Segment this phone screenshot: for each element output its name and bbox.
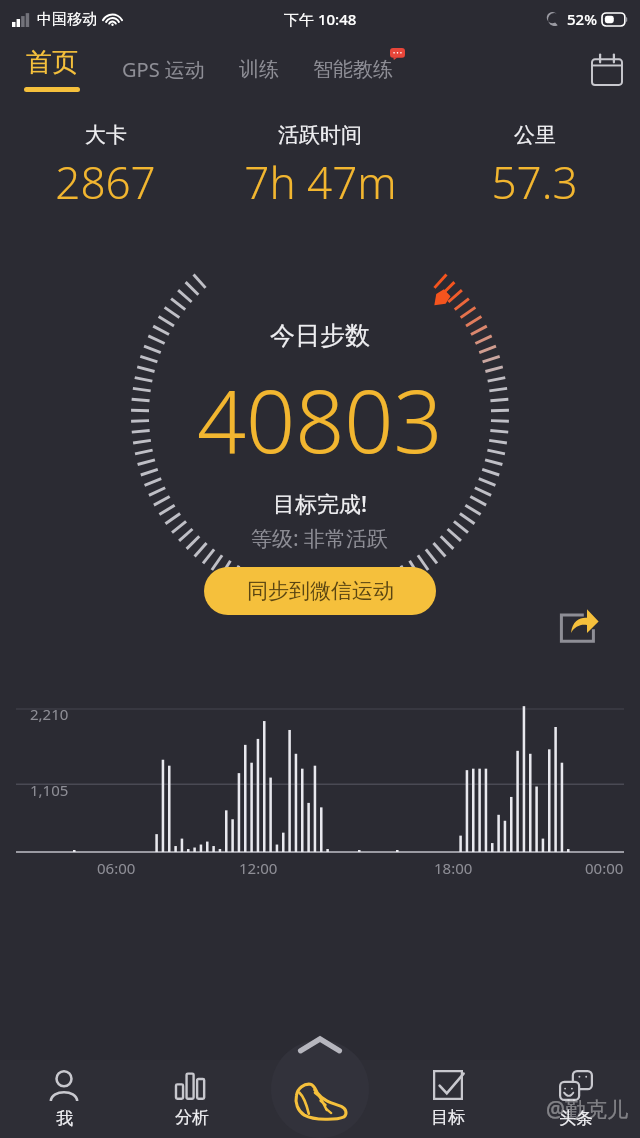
button[interactable]: 我	[0, 1060, 128, 1138]
staticText: 中国移动	[37, 10, 97, 29]
staticText: 06:00	[97, 858, 136, 878]
staticText: 头条	[559, 1108, 593, 1129]
button[interactable]: 大卡	[10, 122, 201, 212]
staticText: 分析	[175, 1107, 209, 1128]
staticText: 00:00	[585, 858, 624, 878]
button[interactable]: GPS 运动	[118, 46, 209, 93]
staticText: 等级: 非常活跃	[251, 524, 389, 553]
button[interactable]: 2,210	[0, 686, 640, 886]
staticText: @勤克儿	[546, 1095, 628, 1124]
staticText: 活跃时间	[278, 122, 362, 148]
staticText: 今日步数	[270, 320, 370, 351]
staticText: 目标	[431, 1107, 465, 1128]
staticText: 目标完成!	[273, 488, 368, 518]
staticText: 首页	[26, 46, 78, 79]
button[interactable]: Steps	[256, 1060, 384, 1138]
staticText: 40803	[197, 361, 443, 478]
staticText: 52%	[567, 9, 597, 29]
staticText: 2,210	[30, 704, 69, 724]
staticText: 公里	[514, 122, 556, 148]
staticText: 我	[56, 1108, 73, 1129]
staticText: 下午 10:48	[284, 9, 357, 29]
staticText: 7h 47m	[244, 152, 397, 212]
button[interactable]: 目标	[384, 1060, 512, 1138]
button[interactable]: Calendar	[584, 46, 640, 93]
staticText: 18:00	[434, 858, 473, 878]
button[interactable]: 活跃时间	[201, 122, 439, 212]
button[interactable]: Share	[556, 602, 602, 648]
button[interactable]: 公里	[439, 122, 630, 212]
button[interactable]: 头条	[512, 1060, 640, 1138]
staticText: 同步到微信运动	[247, 578, 394, 604]
staticText: 12:00	[239, 858, 278, 878]
staticText: 1,105	[30, 780, 69, 800]
staticText: 57.3	[491, 152, 578, 212]
button[interactable]: 首页	[22, 42, 82, 96]
button[interactable]: 训练	[235, 47, 283, 92]
button[interactable]: 同步到微信运动	[204, 567, 436, 615]
staticText: 大卡	[85, 122, 127, 148]
staticText: 2867	[55, 152, 156, 212]
button[interactable]: 智能教练	[309, 47, 397, 92]
staticText: 智能教练	[313, 57, 393, 82]
button[interactable]: 分析	[128, 1060, 256, 1138]
